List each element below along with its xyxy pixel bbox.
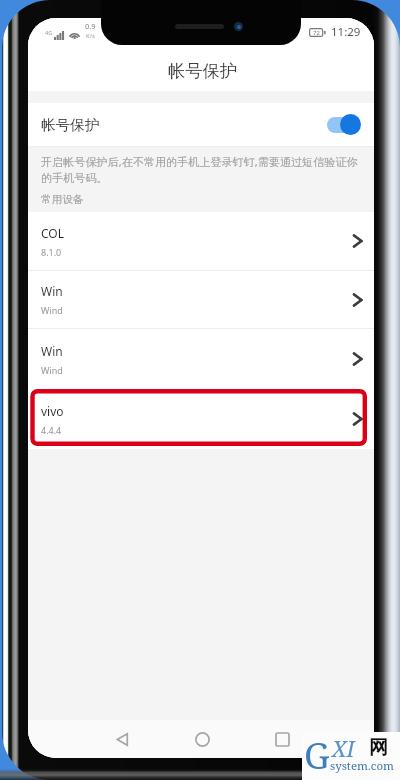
staticText: 网 bbox=[369, 736, 388, 760]
button[interactable]: vivo bbox=[28, 389, 374, 449]
staticText: 0.9 bbox=[85, 21, 96, 31]
staticText: 帐号保护 bbox=[168, 60, 238, 82]
staticText: Win bbox=[41, 343, 63, 359]
staticText: G bbox=[304, 731, 330, 779]
staticText: system.com bbox=[330, 758, 394, 774]
button[interactable]: Back bbox=[106, 723, 138, 755]
button[interactable]: Win bbox=[28, 329, 374, 389]
button[interactable]: COL bbox=[28, 212, 374, 270]
button[interactable]: Home bbox=[186, 723, 218, 755]
staticText: Win bbox=[41, 283, 63, 299]
staticText: 4G bbox=[45, 29, 53, 36]
button[interactable]: Win bbox=[28, 271, 374, 328]
staticText: 开启帐号保护后,在不常用的手机上登录钉钉,需要通过短信验证你的手机号码。 bbox=[41, 154, 360, 185]
staticText: 8.1.0 bbox=[41, 246, 62, 258]
staticText: 4.4.4 bbox=[41, 424, 62, 436]
staticText: Wind bbox=[41, 364, 63, 376]
staticText: 帐号保护 bbox=[41, 116, 100, 134]
staticText: 常用设备 bbox=[41, 193, 84, 206]
staticText: K/s bbox=[86, 32, 95, 40]
staticText: XI bbox=[332, 733, 355, 763]
staticText: COL bbox=[41, 225, 65, 241]
button[interactable]: Recent apps bbox=[266, 723, 298, 755]
button[interactable]: 帐号保护 bbox=[28, 103, 374, 146]
staticText: 11:29 bbox=[331, 24, 361, 40]
staticText: 72 bbox=[313, 29, 320, 37]
staticText: Wind bbox=[41, 304, 63, 316]
staticText: vivo bbox=[41, 403, 64, 419]
